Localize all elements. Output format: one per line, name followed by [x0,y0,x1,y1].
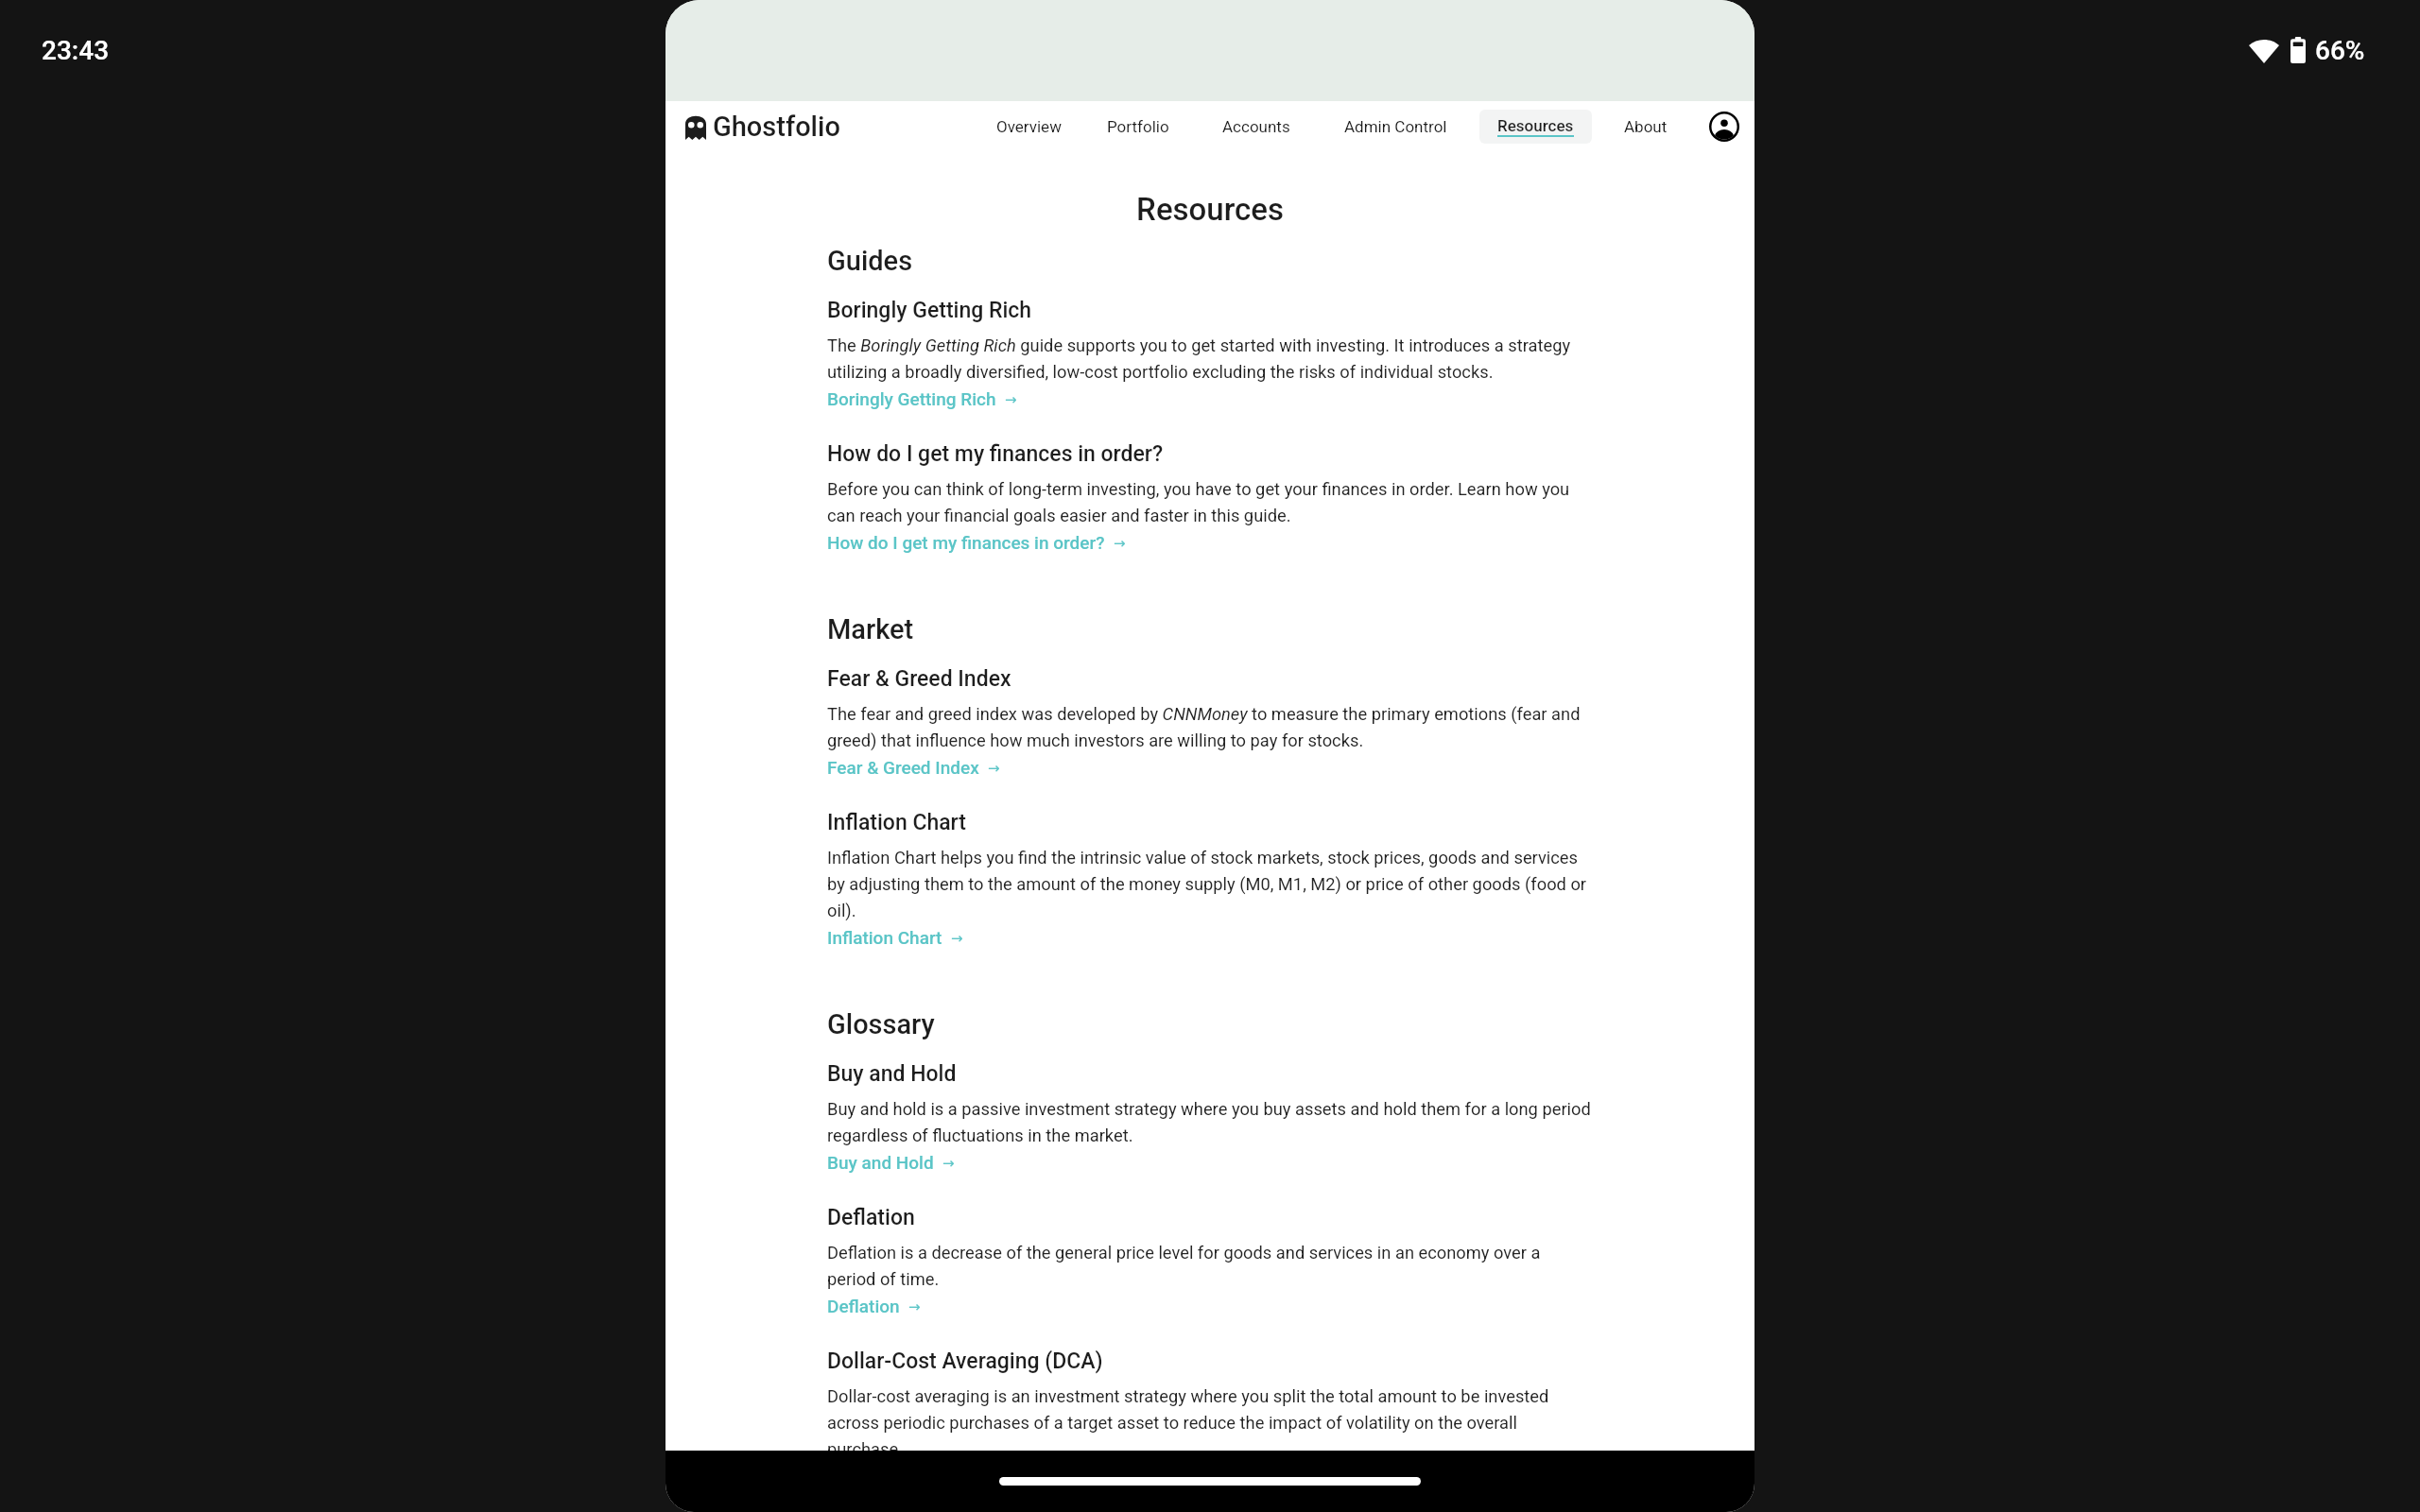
button[interactable]: Deflation [827,1296,921,1316]
staticText: Market [827,613,914,645]
staticText: Buy and Hold [827,1152,934,1173]
button[interactable]: About [1613,110,1679,144]
staticText: 66% [2315,35,2365,66]
staticText: → [1005,391,1017,407]
staticText: Glossary [827,1008,935,1040]
staticText: About [1624,117,1668,136]
staticText: Boringly Getting Rich [827,388,996,409]
staticText: → [908,1298,921,1314]
staticText: Accounts [1222,117,1290,136]
staticText: → [988,760,1000,776]
staticText: Deflation is a decrease of the general p… [827,1243,1593,1290]
staticText: Inflation Chart helps you find the intri… [827,848,1593,921]
staticText: → [1114,535,1126,551]
staticText: How do I get my finances in order? [827,532,1105,553]
staticText: Fear & Greed Index [827,757,979,778]
staticText: Portfolio [1107,117,1169,136]
button[interactable]: Fear & Greed Index [827,757,1000,778]
button[interactable]: Resources [1479,110,1592,144]
button[interactable]: Inflation Chart [827,927,963,948]
staticText: Resources [1497,116,1574,135]
staticText: Inflation Chart [827,810,966,835]
staticText: Resources [665,191,1754,228]
staticText: Buy and hold is a passive investment str… [827,1099,1593,1146]
button[interactable]: Ghostfolio [677,103,849,150]
staticText: 23:43 [42,35,110,66]
button[interactable]: Accounts [1211,110,1302,144]
button[interactable]: Overview [985,110,1073,144]
staticText: Buy and Hold [827,1061,957,1087]
button[interactable]: Boringly Getting Rich [827,388,1017,409]
button[interactable]: Buy and Hold [827,1152,955,1173]
staticText: How do I get my finances in order? [827,441,1164,467]
button[interactable]: Admin Control [1333,110,1459,144]
staticText: The Boringly Getting Rich guide supports… [827,335,1593,383]
staticText: Deflation [827,1296,900,1316]
staticText: Before you can think of long-term invest… [827,479,1593,526]
staticText: Guides [827,245,913,277]
staticText: Inflation Chart [827,927,942,948]
button[interactable]: Portfolio [1096,110,1181,144]
staticText: → [942,1155,955,1171]
staticText: Fear & Greed Index [827,666,1011,692]
button[interactable]: Account [1705,108,1743,146]
staticText: → [951,930,963,946]
staticText: Ghostfolio [713,111,840,143]
staticText: Boringly Getting Rich [827,298,1032,323]
staticText: Dollar-cost averaging is an investment s… [827,1386,1593,1460]
staticText: Dollar-Cost Averaging (DCA) [827,1349,1103,1374]
staticText: Admin Control [1344,117,1447,136]
staticText: Overview [996,117,1062,136]
staticText: Deflation [827,1205,915,1230]
staticText: The fear and greed index was developed b… [827,704,1593,751]
button[interactable]: How do I get my finances in order? [827,532,1126,553]
